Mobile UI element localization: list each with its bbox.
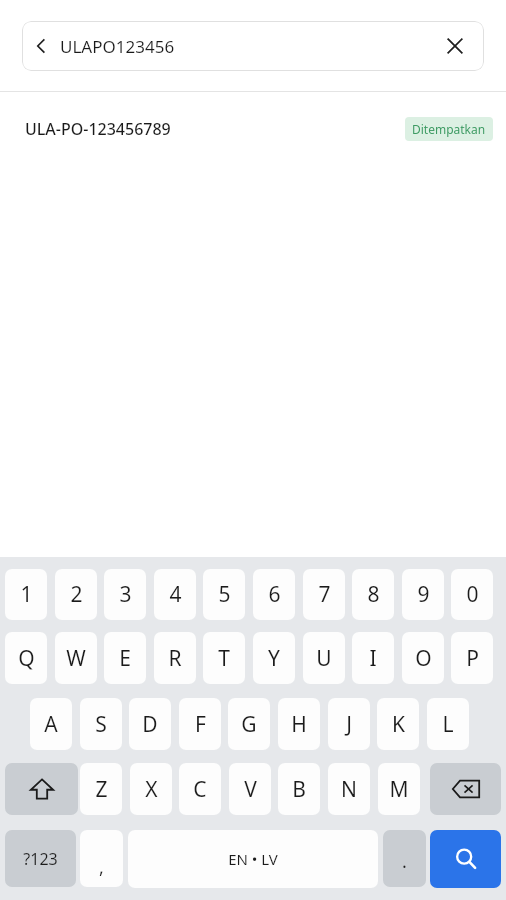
staticText: G [241,710,257,739]
button[interactable]: W [55,632,97,684]
staticText: H [291,710,307,739]
button[interactable]: 4 [154,569,196,620]
button[interactable]: 5 [203,569,245,620]
button[interactable]: A [30,698,72,750]
staticText: T [218,644,230,673]
staticText: P [466,644,479,673]
button[interactable]: C [179,763,221,815]
staticText: C [193,775,207,804]
staticText: D [142,710,158,739]
button[interactable]: O [402,632,444,684]
button[interactable]: X [130,763,172,815]
staticText: Z [95,775,108,804]
staticText: O [415,644,432,673]
button[interactable]: 3 [104,569,146,620]
button[interactable]: Search [430,830,501,888]
button[interactable]: R [154,632,196,684]
staticText: 2 [70,580,83,609]
button[interactable]: ?123 [5,830,76,887]
staticText: 8 [367,580,380,609]
button[interactable]: S [80,698,122,750]
button[interactable]: Back [22,21,60,71]
staticText: L [442,710,454,739]
button[interactable]: J [328,698,370,750]
button[interactable]: I [352,632,394,684]
staticText: 0 [466,580,479,609]
button[interactable]: D [129,698,171,750]
button[interactable]: K [377,698,419,750]
button[interactable]: Comma [80,830,123,887]
button[interactable]: 8 [352,569,394,620]
staticText: EN • LV [228,849,278,869]
button[interactable]: 0 [451,569,493,620]
button[interactable]: Shift [5,763,78,815]
button[interactable]: M [378,763,420,815]
staticText: 7 [318,580,331,609]
button[interactable]: Z [80,763,122,815]
button[interactable]: EN • LV [128,830,378,888]
staticText: M [389,775,409,804]
button[interactable]: L [427,698,469,750]
button[interactable]: Clear [426,21,484,71]
button[interactable]: 9 [402,569,444,620]
button[interactable]: F [179,698,221,750]
staticText: F [195,710,206,739]
button[interactable]: 2 [55,569,97,620]
button[interactable]: ULA-PO-123456789 [0,92,506,165]
staticText: X [145,775,158,804]
button[interactable]: Q [5,632,47,684]
staticText: U [316,644,332,673]
staticText: W [66,644,86,673]
button[interactable]: Backspace [430,763,501,815]
button[interactable]: Period [383,830,426,887]
staticText: N [341,775,357,804]
staticText: J [346,710,352,739]
staticText: 5 [218,580,231,609]
staticText: 3 [119,580,132,609]
button[interactable]: N [328,763,370,815]
staticText: 1 [20,580,33,609]
staticText: E [119,644,131,673]
staticText: 6 [268,580,281,609]
staticText: K [392,710,405,739]
staticText: ULA-PO-123456789 [25,118,405,140]
button[interactable]: P [451,632,493,684]
button[interactable]: Y [253,632,295,684]
button[interactable]: 1 [5,569,47,620]
button[interactable]: E [104,632,146,684]
staticText: ?123 [23,848,58,870]
staticText: V [244,775,257,804]
staticText: , [99,855,104,880]
button[interactable]: U [303,632,345,684]
staticText: ULAPO123456 [60,35,426,58]
staticText: S [95,710,107,739]
button[interactable]: B [278,763,320,815]
button[interactable]: G [228,698,270,750]
staticText: A [44,710,58,739]
button[interactable]: 7 [303,569,345,620]
staticText: Ditempatkan [412,121,486,137]
staticText: . [402,849,407,874]
staticText: B [292,775,306,804]
staticText: 4 [169,580,182,609]
staticText: Y [268,644,280,673]
button[interactable]: V [229,763,271,815]
button[interactable]: T [203,632,245,684]
button[interactable]: 6 [253,569,295,620]
staticText: Q [18,644,35,673]
staticText: 9 [417,580,430,609]
staticText: R [168,644,182,673]
staticText: I [369,644,377,673]
button[interactable]: H [278,698,320,750]
